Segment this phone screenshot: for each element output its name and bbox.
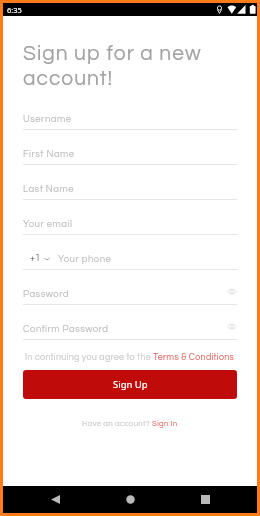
staticText: 6:35 [7,5,22,15]
button[interactable]: Home [115,486,145,513]
staticText: Your email [23,219,237,229]
staticText: First Name [23,149,237,159]
button[interactable]: Your email [23,200,237,235]
button[interactable]: Select country code [30,254,50,263]
button[interactable]: Confirm Password [23,305,237,340]
button[interactable]: Recent apps [190,486,220,513]
staticText: Username [23,114,237,124]
other: Show password [227,289,237,300]
staticText: Password [23,289,227,299]
staticText: Sign Up [113,378,148,391]
button[interactable]: Last Name [23,165,237,200]
button[interactable]: Select country code [23,235,237,270]
button[interactable]: Back [40,486,70,513]
button[interactable]: Username [23,95,237,130]
staticText: +1 [30,254,41,263]
button[interactable]: Have an account? Sign In [23,420,237,428]
button[interactable]: Password [23,270,237,305]
staticText: Sign up for a new account! [23,43,237,89]
staticText: In continuing you agree to the Terms & C… [25,353,235,362]
staticText: Have an account? Sign In [82,420,178,428]
other: Show password [227,324,237,335]
staticText: Your phone [58,254,237,264]
button[interactable]: Sign Up [23,370,237,399]
staticText: Confirm Password [23,324,227,334]
staticText: Last Name [23,184,237,194]
button[interactable]: In continuing you agree to the Terms & C… [23,353,237,362]
button[interactable]: First Name [23,130,237,165]
